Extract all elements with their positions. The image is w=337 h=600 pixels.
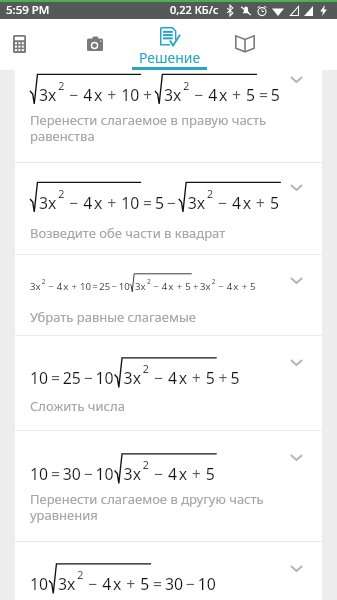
button[interactable]: Убрать равные слагаемые bbox=[15, 255, 322, 335]
button[interactable]: Перенести слагаемое в правую часть равен… bbox=[15, 70, 322, 162]
other: Expand step bbox=[290, 359, 303, 368]
other: Expand step bbox=[290, 454, 303, 463]
button[interactable]: Book bbox=[207, 19, 282, 70]
staticText: 5:59 PM bbox=[6, 2, 50, 18]
staticText: Перенести слагаемое в другую часть уравн… bbox=[30, 490, 267, 523]
staticText: Убрать равные слагаемые bbox=[30, 308, 196, 326]
button[interactable]: Перенести слагаемое в другую часть уравн… bbox=[15, 431, 322, 541]
button[interactable]: Calculator bbox=[0, 19, 57, 70]
staticText: Перенести слагаемое в правую часть равен… bbox=[30, 111, 267, 144]
button[interactable]: Expand step bbox=[15, 542, 322, 584]
staticText: Решение bbox=[139, 48, 201, 67]
button[interactable]: Solution bbox=[132, 19, 207, 70]
button[interactable]: Возведите обе части в квадрат bbox=[15, 163, 322, 254]
other: Expand step bbox=[290, 277, 303, 286]
staticText: 0,22 КБ/с bbox=[170, 2, 219, 17]
button[interactable]: Сложить числа bbox=[15, 336, 322, 430]
other: Expand step bbox=[290, 565, 303, 574]
button[interactable]: Camera bbox=[57, 19, 132, 70]
staticText: Сложить числа bbox=[30, 397, 125, 415]
staticText: Возведите обе части в квадрат bbox=[30, 224, 226, 242]
other: Expand step bbox=[290, 76, 303, 85]
other: Expand step bbox=[290, 184, 303, 193]
